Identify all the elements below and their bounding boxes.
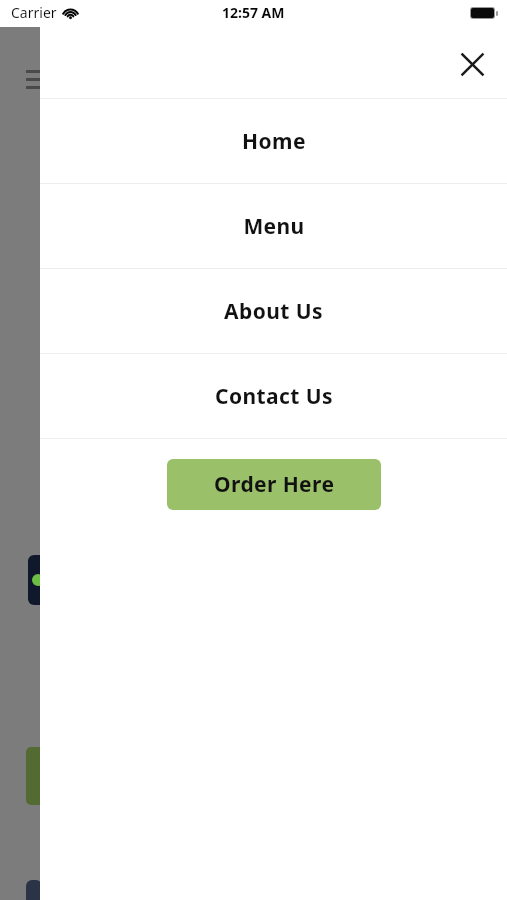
staticText: About Us xyxy=(224,297,323,326)
button[interactable]: About Us xyxy=(40,269,507,353)
staticText: Order Here xyxy=(214,470,335,499)
button[interactable]: Contact Us xyxy=(40,354,507,438)
staticText: Carrier xyxy=(11,3,57,22)
staticText: Menu xyxy=(243,212,305,241)
button[interactable]: Close menu xyxy=(450,42,494,86)
staticText: Contact Us xyxy=(215,382,333,411)
button[interactable]: Home xyxy=(40,99,507,183)
staticText: 12:57 AM xyxy=(222,3,285,22)
staticText: Home xyxy=(242,127,306,156)
button[interactable]: Order Here xyxy=(167,459,381,510)
button[interactable]: Menu xyxy=(40,184,507,268)
